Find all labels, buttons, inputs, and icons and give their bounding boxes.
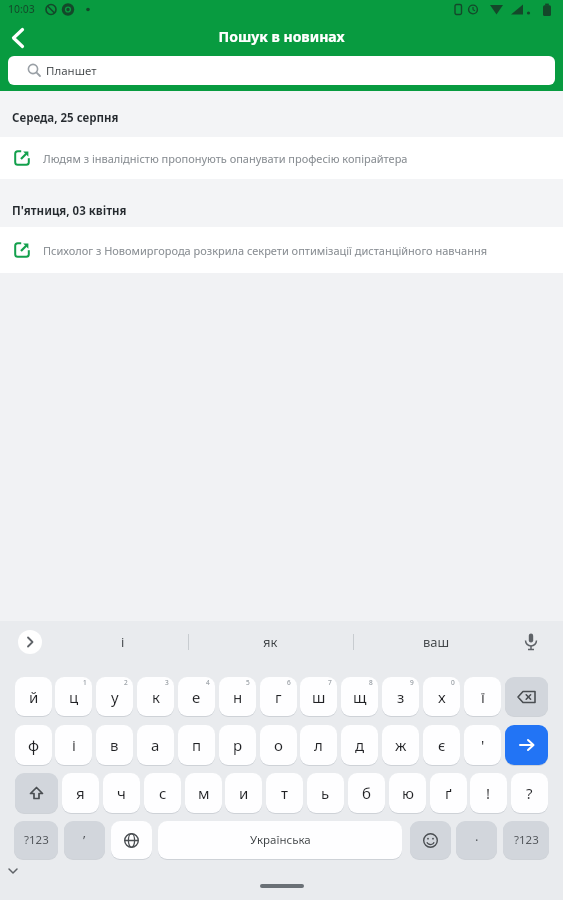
staticText: д bbox=[355, 735, 365, 755]
button[interactable]: ч bbox=[103, 773, 140, 813]
button[interactable]: й bbox=[15, 677, 52, 716]
staticText: як bbox=[263, 633, 278, 651]
button[interactable] bbox=[410, 821, 451, 859]
button[interactable]: ш bbox=[300, 677, 337, 716]
staticText: Планшет bbox=[46, 63, 97, 79]
staticText: ї bbox=[481, 687, 485, 707]
button[interactable]: в bbox=[96, 725, 133, 765]
button[interactable]: ж bbox=[382, 725, 419, 765]
button[interactable]: Людям з інвалідністю пропонують опануват… bbox=[0, 137, 563, 179]
button[interactable]: ь bbox=[307, 773, 344, 813]
button[interactable] bbox=[521, 632, 541, 652]
staticText: 2 bbox=[124, 678, 128, 687]
button[interactable]: Психолог з Новомиргорода розкрила секрет… bbox=[0, 227, 563, 273]
staticText: Пошук в новинах bbox=[0, 27, 563, 47]
button[interactable]: ’ bbox=[64, 821, 105, 859]
button[interactable]: ґ bbox=[430, 773, 467, 813]
staticText: ?123 bbox=[24, 832, 49, 848]
staticText: м bbox=[198, 783, 210, 803]
button[interactable]: я bbox=[62, 773, 99, 813]
button[interactable]: є bbox=[423, 725, 460, 765]
button[interactable]: м bbox=[185, 773, 222, 813]
button[interactable]: ?123 bbox=[503, 821, 549, 859]
button[interactable]: т bbox=[266, 773, 303, 813]
button[interactable]: г bbox=[260, 677, 297, 716]
button[interactable]: ваш bbox=[353, 629, 520, 655]
staticText: ю bbox=[402, 783, 414, 803]
button[interactable]: н bbox=[219, 677, 256, 716]
button[interactable] bbox=[15, 773, 58, 813]
button[interactable]: д bbox=[341, 725, 378, 765]
button[interactable] bbox=[4, 27, 32, 51]
button[interactable]: а bbox=[137, 725, 174, 765]
staticText: і bbox=[72, 735, 76, 755]
button[interactable]: п bbox=[178, 725, 215, 765]
button[interactable]: ї bbox=[464, 677, 501, 716]
staticText: л bbox=[314, 735, 323, 755]
button[interactable]: е bbox=[178, 677, 215, 716]
staticText: я bbox=[76, 783, 85, 803]
staticText: ваш bbox=[423, 633, 450, 651]
staticText: 7 bbox=[328, 678, 332, 687]
staticText: Психолог з Новомиргорода розкрила секрет… bbox=[43, 243, 488, 258]
button[interactable]: р bbox=[219, 725, 256, 765]
button[interactable]: Українська bbox=[158, 821, 402, 859]
staticText: є bbox=[438, 735, 446, 755]
staticText: е bbox=[192, 687, 201, 707]
button[interactable]: у bbox=[96, 677, 133, 716]
staticText: 3 bbox=[165, 678, 169, 687]
staticText: х bbox=[438, 687, 446, 707]
button[interactable]: х bbox=[423, 677, 460, 716]
button[interactable]: о bbox=[260, 725, 297, 765]
staticText: Середа, 25 серпня bbox=[12, 110, 119, 126]
staticText: с bbox=[159, 783, 167, 803]
staticText: ! bbox=[486, 783, 491, 803]
staticText: 6 bbox=[287, 678, 291, 687]
button[interactable]: ю bbox=[389, 773, 426, 813]
button[interactable] bbox=[505, 677, 548, 716]
staticText: ф bbox=[28, 735, 40, 755]
staticText: ?123 bbox=[514, 832, 539, 848]
staticText: п bbox=[192, 735, 202, 755]
button[interactable]: щ bbox=[341, 677, 378, 716]
staticText: б bbox=[362, 783, 371, 803]
staticText: ґ bbox=[445, 783, 452, 803]
button[interactable]: ф bbox=[15, 725, 52, 765]
button[interactable] bbox=[505, 725, 548, 765]
staticText: о bbox=[274, 735, 283, 755]
button[interactable]: и bbox=[225, 773, 262, 813]
staticText: ? bbox=[526, 783, 533, 803]
staticText: ь bbox=[321, 783, 330, 803]
button[interactable]: · bbox=[456, 821, 497, 859]
staticText: й bbox=[29, 687, 39, 707]
staticText: · bbox=[475, 831, 479, 849]
staticText: ж bbox=[395, 735, 407, 755]
button[interactable]: і bbox=[55, 725, 92, 765]
button[interactable]: л bbox=[300, 725, 337, 765]
button[interactable]: з bbox=[382, 677, 419, 716]
button[interactable]: ? bbox=[511, 773, 548, 813]
button[interactable]: к bbox=[137, 677, 174, 716]
button[interactable]: б bbox=[348, 773, 385, 813]
button[interactable]: ?123 bbox=[14, 821, 58, 859]
button[interactable]: як bbox=[188, 629, 353, 655]
button[interactable] bbox=[18, 630, 42, 654]
button[interactable]: ц bbox=[55, 677, 92, 716]
button[interactable] bbox=[111, 821, 152, 859]
staticText: Українська bbox=[250, 832, 311, 848]
staticText: а bbox=[151, 735, 160, 755]
staticText: щ bbox=[353, 687, 367, 707]
button[interactable]: і bbox=[57, 629, 188, 655]
staticText: ' bbox=[481, 735, 485, 755]
button[interactable]: Планшет bbox=[8, 56, 555, 85]
button[interactable]: ' bbox=[464, 725, 501, 765]
staticText: 9 bbox=[410, 678, 414, 687]
staticText: 10:03 bbox=[8, 2, 35, 16]
staticText: Людям з інвалідністю пропонують опануват… bbox=[43, 151, 408, 166]
staticText: г bbox=[275, 687, 282, 707]
staticText: к bbox=[152, 687, 160, 707]
button[interactable]: ! bbox=[470, 773, 507, 813]
staticText: 4 bbox=[206, 678, 210, 687]
staticText: 5 bbox=[246, 678, 250, 687]
button[interactable]: с bbox=[144, 773, 181, 813]
